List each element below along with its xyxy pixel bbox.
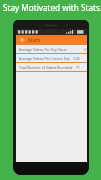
button[interactable]: Average Videos Per Current Day (16, 54, 87, 62)
staticText: 71 (76, 65, 80, 70)
button[interactable]: Total Number of Videos Recorded (16, 63, 87, 71)
staticText: 3.00 (73, 56, 80, 61)
staticText: Average Videos Per Day (Since Inception) (19, 47, 84, 52)
staticText: Stats (28, 36, 41, 43)
staticText: Total Number of Videos Recorded (19, 65, 73, 70)
button[interactable]: Navigate up (16, 35, 87, 44)
staticText: Average Videos Per Current Day (19, 56, 70, 61)
button[interactable]: Navigate up (19, 37, 25, 43)
staticText: Stay Motivated with Stats. (3, 2, 101, 13)
button[interactable]: Average Videos Per Day (Since Inception) (16, 45, 87, 53)
